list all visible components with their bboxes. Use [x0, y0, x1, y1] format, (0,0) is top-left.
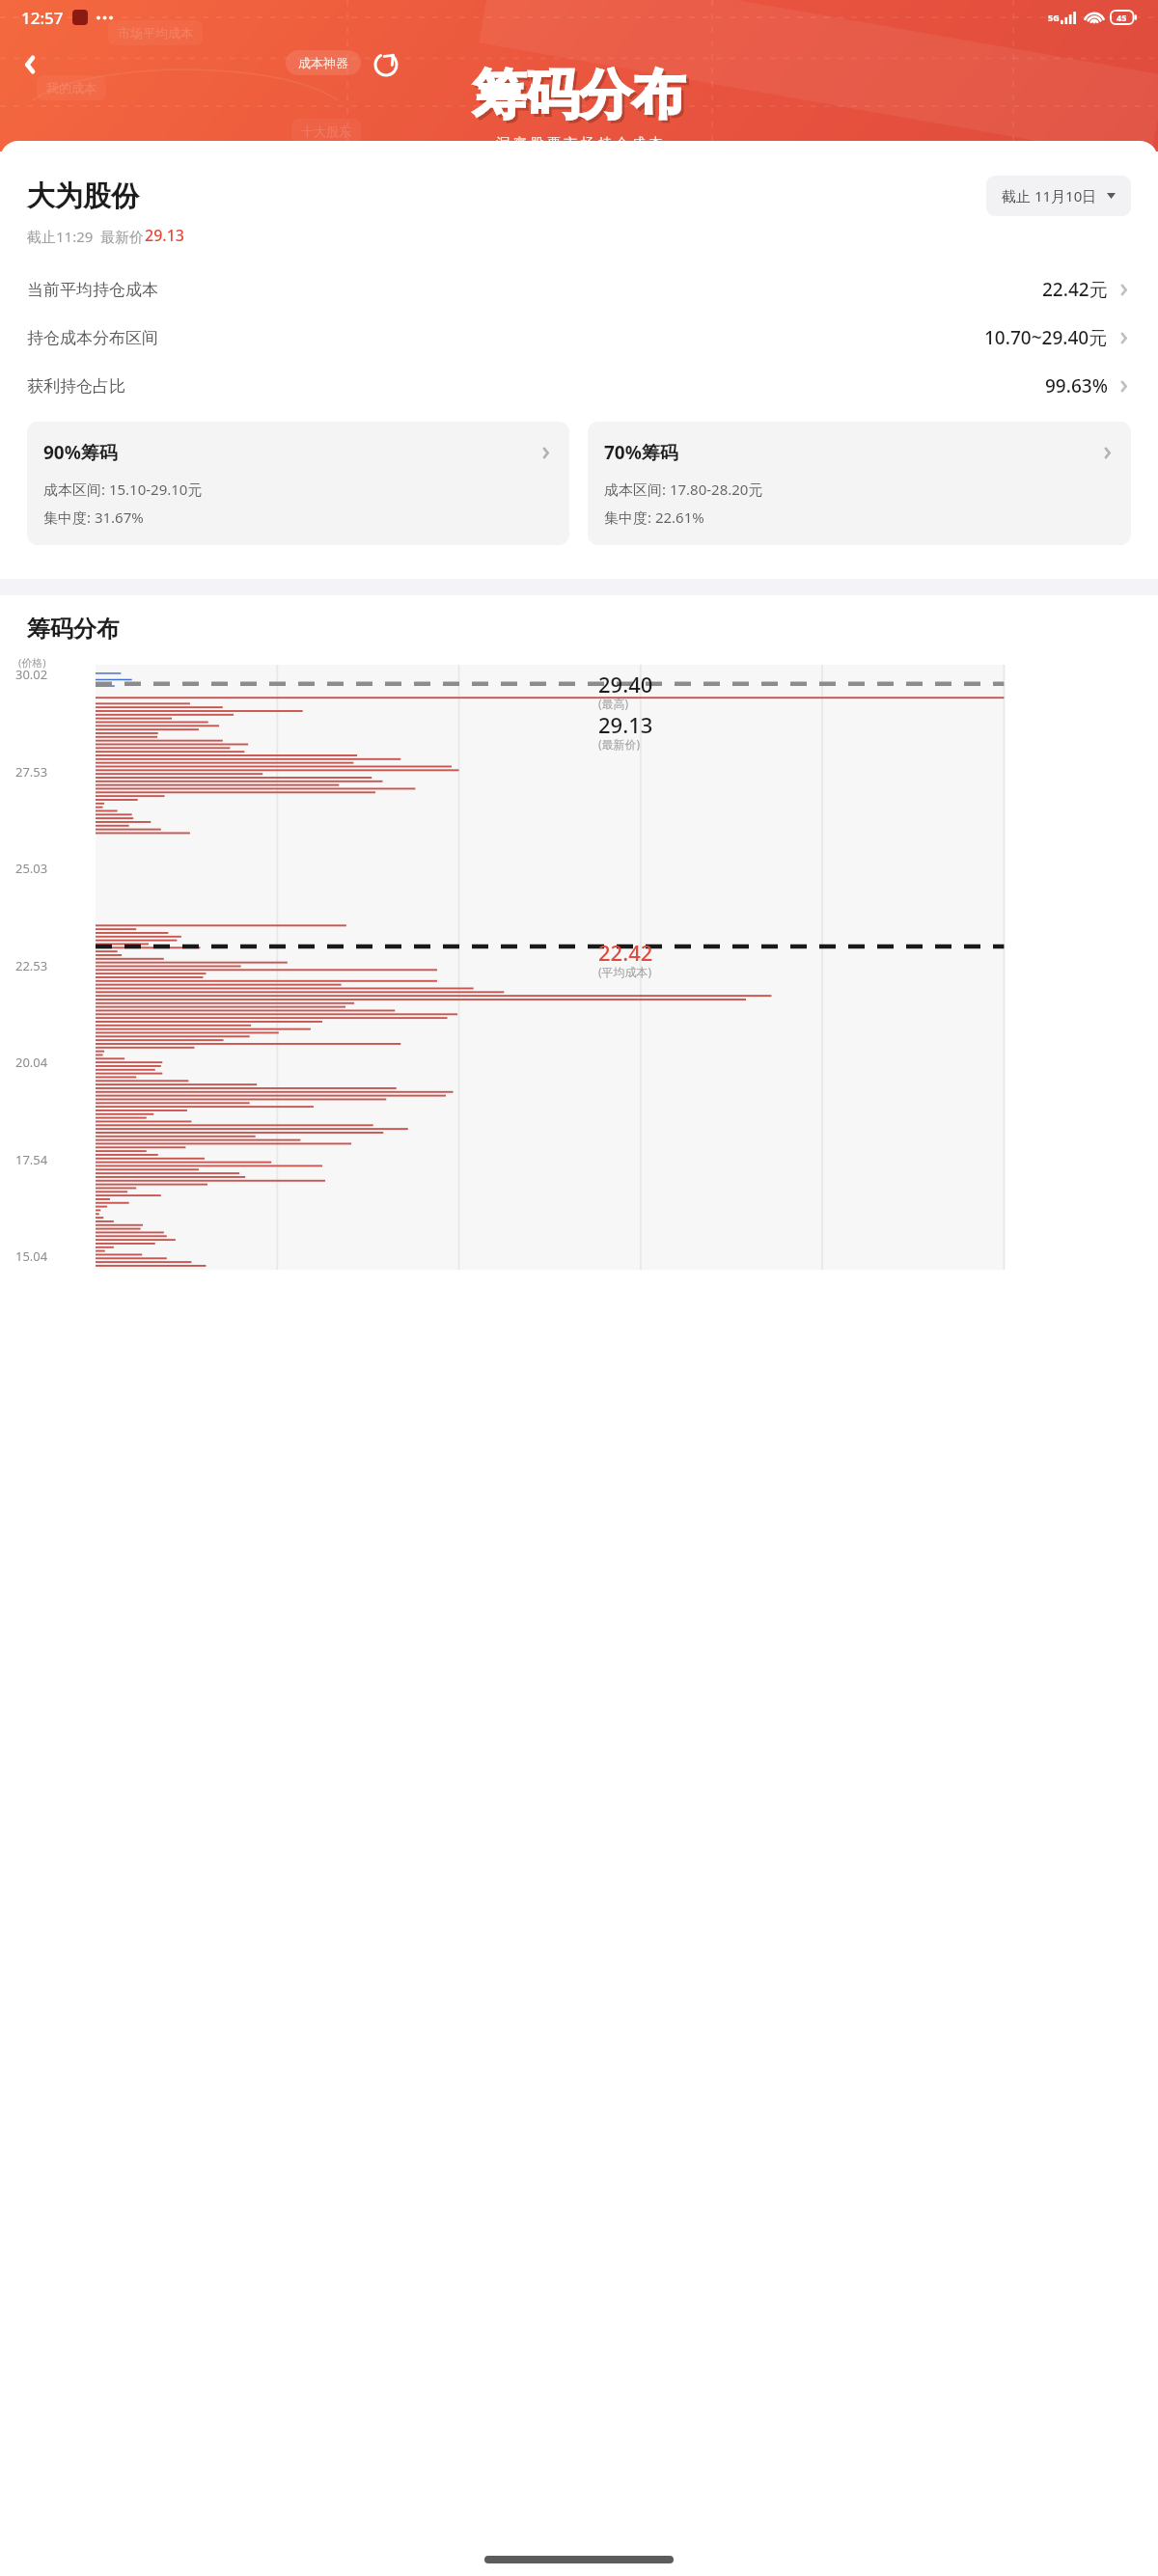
button[interactable]: 70%筹码 [588, 422, 1131, 545]
staticText: (价格) [18, 655, 46, 670]
staticText: 获利持仓占比 [27, 376, 125, 397]
staticText: 27.53 [15, 763, 48, 781]
staticText: 集中度: 22.61% [604, 507, 704, 527]
staticText: 25.03 [15, 860, 48, 877]
staticText: 大为股份 [27, 178, 139, 214]
staticText: 29.40 [598, 670, 653, 699]
staticText: 17.54 [15, 1151, 48, 1168]
staticText: (最高) [598, 696, 629, 711]
staticText: 筹码分布 [27, 615, 120, 644]
staticText: 我的成本 [46, 80, 96, 96]
staticText: 29.13 [598, 710, 653, 739]
staticText: 10.70~29.40元 [984, 325, 1108, 350]
staticText: 截止11:29 最新价 [27, 227, 145, 246]
staticText: 十大股东 [301, 123, 351, 139]
staticText: 22.53 [15, 957, 48, 974]
staticText: 30.02 [15, 666, 48, 683]
button[interactable]: 90%筹码 [27, 422, 569, 545]
staticText: 70%筹码 [604, 440, 678, 465]
staticText: 22.42元 [1042, 277, 1108, 302]
button[interactable]: 获利持仓占比 [27, 362, 1131, 410]
staticText: 90%筹码 [43, 440, 118, 465]
button[interactable]: 持仓成本分布区间 [27, 314, 1131, 362]
staticText: 当前平均持仓成本 [27, 280, 158, 300]
staticText: 29.13 [145, 225, 184, 246]
staticText: 成本神器 [298, 55, 348, 70]
button[interactable]: 当前平均持仓成本 [27, 265, 1131, 314]
staticText: 持仓成本分布区间 [27, 328, 158, 348]
button[interactable]: Back [8, 42, 52, 87]
staticText: 15.04 [15, 1247, 48, 1265]
staticText: 筹码分布 [476, 65, 688, 131]
staticText: 22.42 [598, 938, 653, 967]
staticText: 99.63% [1045, 373, 1108, 398]
staticText: 成本区间: 15.10-29.10元 [43, 480, 203, 499]
staticText: 洞 察 股 票 市 场 持 仓 成 本 [496, 133, 663, 151]
staticText: (平均成本) [598, 964, 652, 979]
staticText: 45 [1117, 12, 1127, 23]
button[interactable]: 成本神器 [286, 50, 361, 75]
button[interactable]: Refresh [366, 44, 406, 85]
staticText: 成本区间: 17.80-28.20元 [604, 480, 763, 499]
staticText: 12:57 [21, 7, 64, 29]
staticText: 截止 11月10日 [1002, 186, 1097, 206]
staticText: 5G [1048, 12, 1060, 23]
staticText: 20.04 [15, 1054, 48, 1071]
button[interactable]: 截止 11月10日 [986, 176, 1131, 216]
staticText: 市场平均成本 [118, 25, 193, 41]
staticText: (最新价) [598, 736, 641, 752]
staticText: 集中度: 31.67% [43, 507, 144, 527]
staticText: 筹码分布 [473, 62, 685, 128]
